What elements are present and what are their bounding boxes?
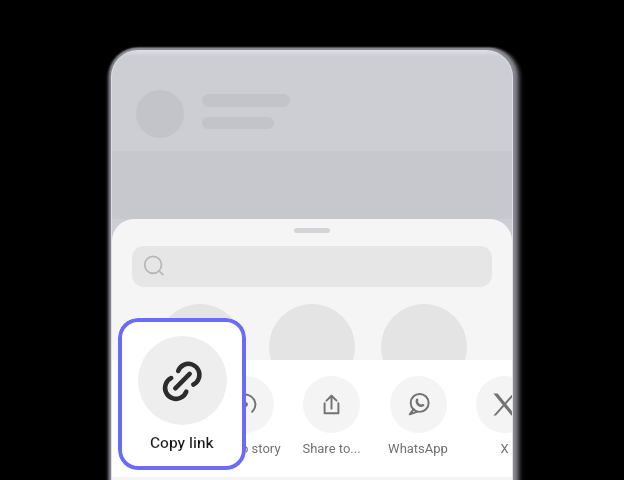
- other: Add to story: [217, 376, 274, 433]
- other: WhatsApp: [390, 376, 447, 433]
- button[interactable]: Search: [132, 246, 492, 287]
- button[interactable]: WhatsApp: [358, 376, 478, 456]
- staticText: Add to story: [210, 441, 281, 456]
- other: Share to: [303, 376, 360, 433]
- button[interactable]: Add to story: [185, 376, 305, 456]
- button[interactable]: X: [444, 376, 512, 456]
- other: X: [476, 376, 512, 433]
- button[interactable]: Copy link: [118, 318, 246, 470]
- staticText: Share to...: [302, 441, 361, 456]
- button[interactable]: Share to: [271, 376, 391, 456]
- staticText: X: [500, 441, 509, 456]
- button[interactable]: Contact: [269, 304, 355, 390]
- staticText: WhatsApp: [388, 441, 448, 456]
- button[interactable]: Contact: [381, 304, 467, 390]
- button[interactable]: Contact: [157, 304, 243, 390]
- staticText: Copy link: [150, 434, 214, 452]
